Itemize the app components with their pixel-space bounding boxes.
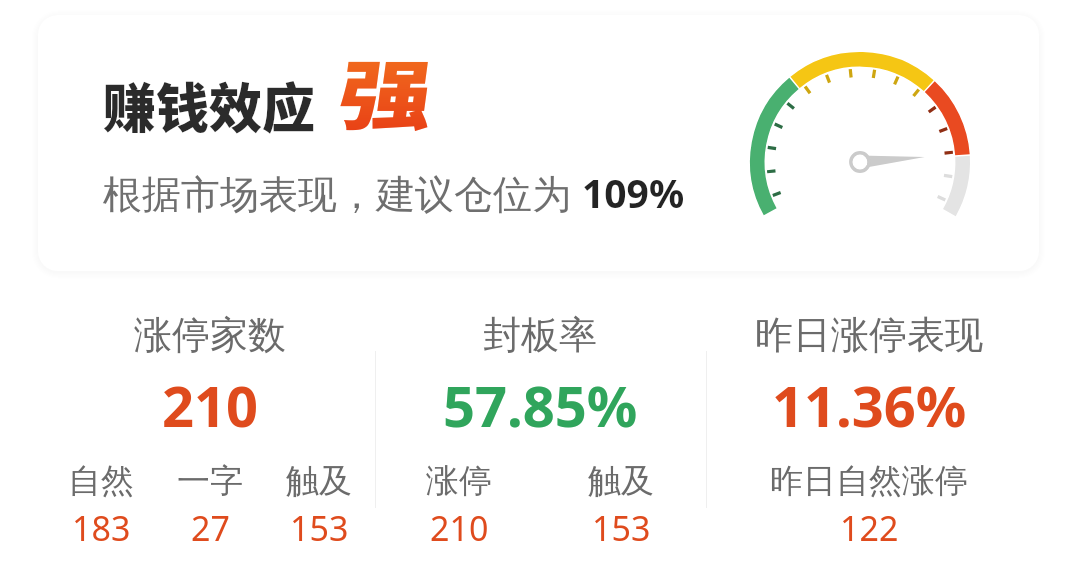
button[interactable]: Market sentiment gauge [742,44,978,271]
staticText: 183 [72,505,131,551]
staticText: 210 [430,505,489,551]
staticText: 153 [290,505,349,551]
staticText: 触及 [286,460,352,502]
staticText: 封板率 [483,311,597,359]
button[interactable]: 昨日涨停表现 [707,296,1078,561]
staticText: 自然 [68,460,134,502]
staticText: 根据市场表现，建议仓位为 [103,166,582,219]
staticText: 210 [162,367,259,443]
staticText: 一字 [177,460,243,502]
staticText: 昨日自然涨停 [770,460,968,502]
staticText: 27 [191,505,230,551]
staticText: 57.85% [443,367,638,443]
staticText: 赚钱效应 [103,67,315,144]
button[interactable]: 涨停家数 [0,296,375,561]
staticText: 昨日涨停表现 [755,311,983,359]
staticText: 触及 [588,460,654,502]
staticText: 11.36% [772,367,967,443]
staticText: 122 [840,505,899,551]
staticText: 153 [592,505,651,551]
button[interactable]: 赚钱效应 [38,15,1039,271]
button[interactable]: 封板率 [376,296,706,561]
staticText: 涨停家数 [134,311,286,359]
staticText: 涨停 [426,460,492,502]
staticText: 109% [582,166,685,219]
